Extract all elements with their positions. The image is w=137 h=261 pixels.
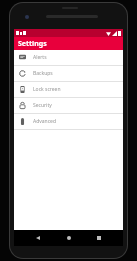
staticText: Backups: [33, 70, 53, 77]
button[interactable]: Back: [32, 232, 44, 244]
staticText: Security: [33, 102, 52, 109]
staticText: Alerts: [33, 54, 47, 61]
staticText: Advanced: [33, 118, 57, 125]
button[interactable]: Security: [14, 98, 123, 113]
button[interactable]: Alerts: [14, 50, 123, 65]
button[interactable]: Lock screen: [14, 82, 123, 97]
staticText: Settings: [18, 39, 47, 49]
button[interactable]: Home: [63, 232, 75, 244]
button[interactable]: Recent apps: [93, 232, 105, 244]
button[interactable]: Backups: [14, 66, 123, 81]
staticText: Lock screen: [33, 86, 61, 93]
button[interactable]: Advanced: [14, 114, 123, 129]
